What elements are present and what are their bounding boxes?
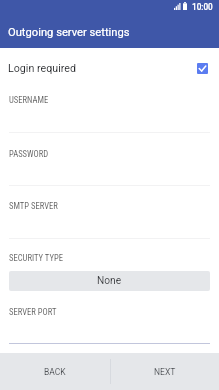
staticText: BACK — [44, 367, 66, 377]
staticText: NEXT — [154, 367, 176, 377]
button[interactable]: NEXT — [110, 353, 219, 390]
staticText: PASSWORD — [9, 149, 49, 159]
staticText: SECURITY TYPE — [9, 253, 63, 263]
staticText: SMTP SERVER — [9, 201, 58, 211]
button[interactable]: None — [9, 271, 210, 291]
staticText: USERNAME — [9, 95, 49, 105]
staticText: None — [97, 275, 122, 287]
button[interactable]: BACK — [0, 353, 110, 390]
staticText: Outgoing server settings — [8, 26, 130, 39]
staticText: Login required — [8, 62, 76, 75]
button[interactable]: Login required — [0, 56, 219, 80]
staticText: 10:00 — [192, 2, 213, 12]
staticText: SERVER PORT — [9, 307, 57, 317]
